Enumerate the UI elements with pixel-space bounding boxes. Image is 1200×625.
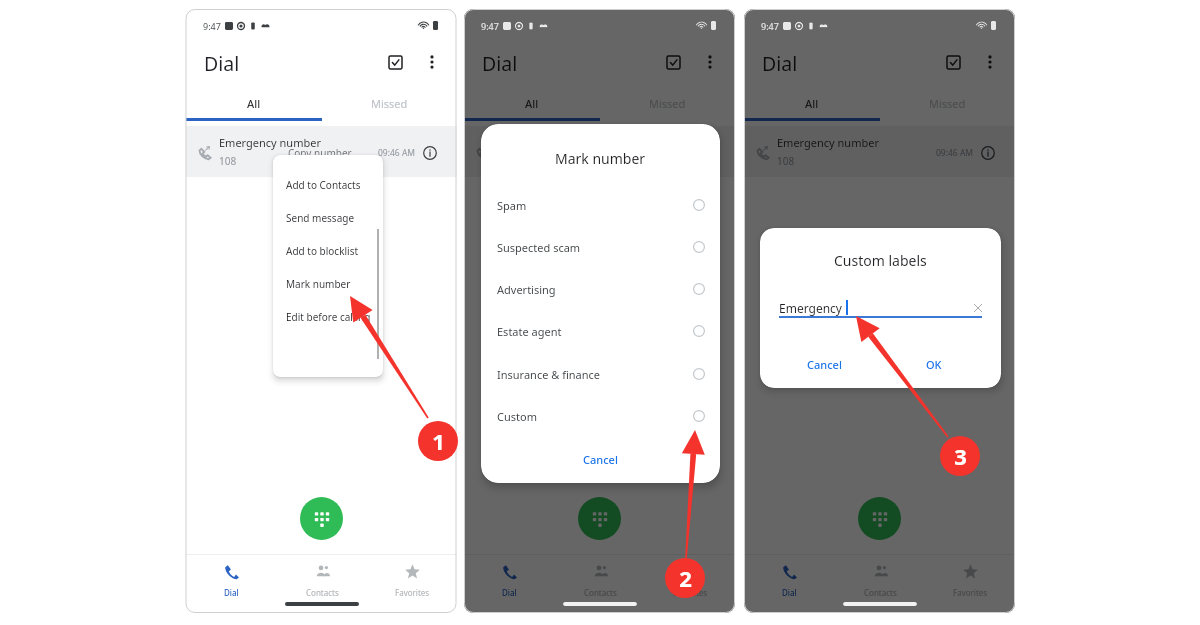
staticText: Missed xyxy=(371,96,408,111)
button[interactable]: Add to blocklist xyxy=(273,235,383,267)
staticText: Suspected scam xyxy=(497,240,581,255)
staticText: Contacts xyxy=(306,587,339,598)
button[interactable]: Advertising xyxy=(481,268,720,310)
staticText: Contacts xyxy=(584,587,617,598)
button[interactable]: Estate agent xyxy=(481,310,720,352)
button[interactable]: Dial xyxy=(464,558,555,600)
staticText: 2 xyxy=(679,563,692,593)
button[interactable]: Missed xyxy=(599,92,735,115)
staticText: Favorites xyxy=(673,587,708,598)
button[interactable]: Missed xyxy=(879,92,1015,115)
button[interactable]: Open dialpad xyxy=(858,497,901,540)
staticText: Dial xyxy=(782,587,797,598)
button[interactable]: Open dialpad xyxy=(578,497,621,540)
staticText: 9:47 xyxy=(761,20,779,32)
button[interactable]: Cancel xyxy=(567,448,634,471)
button[interactable]: Custom xyxy=(481,395,720,437)
staticText: Custom labels xyxy=(834,251,927,270)
button[interactable]: Missed xyxy=(321,92,457,115)
button[interactable]: More options xyxy=(419,49,445,75)
staticText: Cancel xyxy=(583,452,618,467)
staticText: 9:47 xyxy=(481,20,499,32)
button[interactable]: Edit before calling xyxy=(273,301,383,333)
staticText: Favorites xyxy=(953,587,988,598)
staticText: 09:46 AM xyxy=(936,147,974,159)
button[interactable]: All xyxy=(186,92,321,115)
staticText: 9:47 xyxy=(761,20,779,32)
staticText: Mark number xyxy=(286,277,351,291)
button[interactable]: Insurance & finance xyxy=(481,353,720,395)
staticText: Insurance & finance xyxy=(497,367,601,382)
button[interactable]: Emergency number xyxy=(186,126,457,177)
staticText: Favorites xyxy=(395,587,430,598)
staticText: Cancel xyxy=(807,357,842,372)
staticText: 09:46 AM xyxy=(378,147,416,159)
button[interactable]: Dial xyxy=(744,558,835,600)
staticText: Missed xyxy=(649,96,686,111)
staticText: All xyxy=(247,96,261,111)
staticText: Spam xyxy=(497,198,527,213)
staticText: Dial xyxy=(204,50,240,77)
staticText: All xyxy=(805,96,819,111)
button[interactable]: Dial xyxy=(186,558,277,600)
button[interactable]: Suspected scam xyxy=(481,226,720,268)
button[interactable]: Contacts xyxy=(277,558,367,600)
staticText: Dial xyxy=(482,50,518,77)
button[interactable]: Favorites xyxy=(925,558,1015,600)
staticText: Copy number xyxy=(288,146,352,160)
staticText: Custom xyxy=(497,409,537,424)
staticText: Estate agent xyxy=(497,324,562,339)
staticText: Dial xyxy=(762,50,798,77)
button[interactable]: All xyxy=(464,92,599,115)
button[interactable]: Contacts xyxy=(835,558,925,600)
staticText: 108 xyxy=(219,154,237,168)
button[interactable]: Open dialpad xyxy=(300,497,343,540)
staticText: All xyxy=(525,96,539,111)
staticText: 3 xyxy=(954,441,967,471)
staticText: Emergency number xyxy=(777,135,879,150)
button[interactable]: Select calls xyxy=(382,49,408,75)
button[interactable]: Emergency number xyxy=(744,126,1015,177)
button[interactable]: More options xyxy=(977,49,1003,75)
staticText: 108 xyxy=(777,154,795,168)
staticText: Edit before calling xyxy=(286,310,371,324)
button[interactable]: Emergency number xyxy=(464,126,735,177)
staticText: OK xyxy=(926,357,942,372)
staticText: Advertising xyxy=(497,282,556,297)
button[interactable]: Add to Contacts xyxy=(273,169,383,201)
staticText: Add to blocklist xyxy=(286,244,359,258)
button[interactable]: Send message xyxy=(273,202,383,234)
staticText: Mark number xyxy=(555,149,646,168)
button[interactable]: Call details xyxy=(981,146,995,160)
button[interactable]: Contacts xyxy=(555,558,645,600)
staticText: Dial xyxy=(502,587,517,598)
staticText: Contacts xyxy=(864,587,897,598)
staticText: Emergency xyxy=(779,300,842,316)
staticText: Dial xyxy=(224,587,239,598)
staticText: Emergency number xyxy=(219,135,321,150)
button[interactable]: More options xyxy=(697,49,723,75)
button[interactable]: Select calls xyxy=(940,49,966,75)
button[interactable]: Spam xyxy=(481,184,720,226)
button[interactable]: Mark number xyxy=(273,268,383,300)
staticText: 1 xyxy=(432,426,445,456)
button[interactable]: OK xyxy=(921,353,947,376)
button[interactable]: All xyxy=(744,92,879,115)
staticText: Missed xyxy=(929,96,966,111)
button[interactable]: Select calls xyxy=(660,49,686,75)
staticText: Add to Contacts xyxy=(286,178,361,192)
button[interactable]: Call details xyxy=(423,146,437,160)
staticText: Send message xyxy=(286,211,355,225)
staticText: 9:47 xyxy=(481,20,499,32)
staticText: 9:47 xyxy=(203,20,221,32)
button[interactable]: Favorites xyxy=(645,558,735,600)
button[interactable]: Cancel xyxy=(802,353,847,376)
button[interactable]: Favorites xyxy=(367,558,457,600)
